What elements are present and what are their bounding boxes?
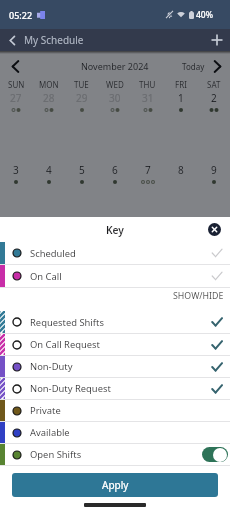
button[interactable]: Non-Duty: [0, 356, 230, 377]
staticText: 40%: [196, 9, 213, 21]
staticText: Open Shifts: [30, 448, 82, 461]
staticText: Non-Duty Request: [30, 382, 111, 395]
button[interactable]: Add: [204, 29, 230, 51]
button[interactable]: Open Shifts: [0, 444, 230, 465]
staticText: Scheduled: [30, 247, 76, 260]
staticText: Requested Shifts: [30, 316, 104, 329]
staticText: SUN: [8, 79, 25, 90]
staticText: 16: [208, 235, 220, 249]
staticText: 7: [145, 163, 151, 177]
staticText: 28: [43, 91, 55, 105]
staticText: 2: [211, 91, 217, 105]
staticText: Available: [30, 426, 70, 439]
button[interactable]: Today: [182, 61, 205, 72]
staticText: My Schedule: [24, 33, 84, 47]
staticText: On Call Request: [30, 338, 100, 351]
button[interactable]: Back: [0, 29, 24, 51]
staticText: 6: [112, 163, 118, 177]
button[interactable]: Open Shifts toggle: [202, 447, 228, 462]
staticText: Non-Duty: [30, 360, 73, 373]
staticText: Apply: [102, 478, 129, 492]
staticText: 30: [109, 91, 121, 105]
staticText: 1: [178, 91, 184, 105]
staticText: SAT: [207, 79, 221, 90]
button[interactable]: Private: [0, 400, 230, 421]
staticText: 13: [109, 235, 121, 249]
staticText: 29: [76, 91, 88, 105]
staticText: TUE: [74, 79, 89, 90]
staticText: WED: [106, 79, 124, 90]
staticText: 31: [142, 91, 154, 105]
staticText: MON: [39, 79, 59, 90]
staticText: THU: [139, 79, 156, 90]
staticText: 9: [211, 163, 217, 177]
staticText: 8: [178, 163, 184, 177]
staticText: SHOW/HIDE: [173, 290, 224, 302]
staticText: On Call: [30, 270, 62, 283]
button[interactable]: On Call: [0, 265, 230, 287]
staticText: Key: [106, 223, 124, 237]
staticText: 27: [10, 91, 22, 105]
staticText: 3: [13, 163, 19, 177]
button[interactable]: Next month: [207, 56, 227, 76]
staticText: 5: [79, 163, 85, 177]
button[interactable]: Available: [0, 422, 230, 443]
staticText: 10: [10, 235, 22, 249]
button[interactable]: Scheduled: [0, 242, 230, 264]
button[interactable]: Apply: [12, 473, 218, 497]
button[interactable]: Requested Shifts: [0, 311, 230, 333]
staticText: 05:22: [9, 9, 33, 21]
staticText: FRI: [175, 79, 187, 90]
staticText: 4: [46, 163, 52, 177]
staticText: November 2024: [81, 60, 149, 72]
button[interactable]: On Call Request: [0, 334, 230, 355]
button[interactable]: Non-Duty Request: [0, 378, 230, 399]
button[interactable]: Close: [206, 221, 223, 238]
staticText: Private: [30, 404, 61, 417]
button[interactable]: Previous month: [5, 56, 25, 76]
